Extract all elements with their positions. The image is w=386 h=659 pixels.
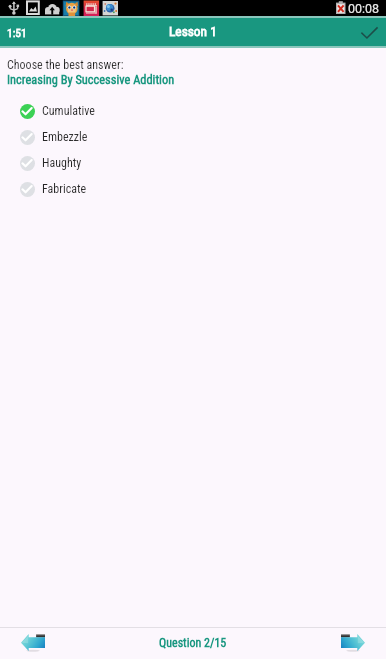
staticText: Cumulative (42, 104, 95, 118)
staticText: 00:08 (348, 1, 380, 16)
button[interactable]: Previous question (0, 628, 66, 659)
button[interactable]: Cumulative (0, 98, 386, 124)
staticText: Embezzle (42, 130, 88, 144)
staticText: Fabricate (42, 182, 87, 196)
staticText: 1:51 (7, 26, 27, 39)
button[interactable]: Haughty (0, 150, 386, 176)
staticText: Lesson 1 (169, 24, 217, 40)
button[interactable]: Fabricate (0, 176, 386, 202)
staticText: Question 2/15 (159, 636, 227, 650)
button[interactable]: Embezzle (0, 124, 386, 150)
staticText: Increasing By Successive Addition (7, 72, 175, 87)
button[interactable]: Next question (320, 628, 386, 659)
button[interactable]: Submit answers (346, 18, 386, 46)
staticText: Haughty (42, 156, 82, 170)
staticText: Choose the best answer: (7, 58, 124, 72)
